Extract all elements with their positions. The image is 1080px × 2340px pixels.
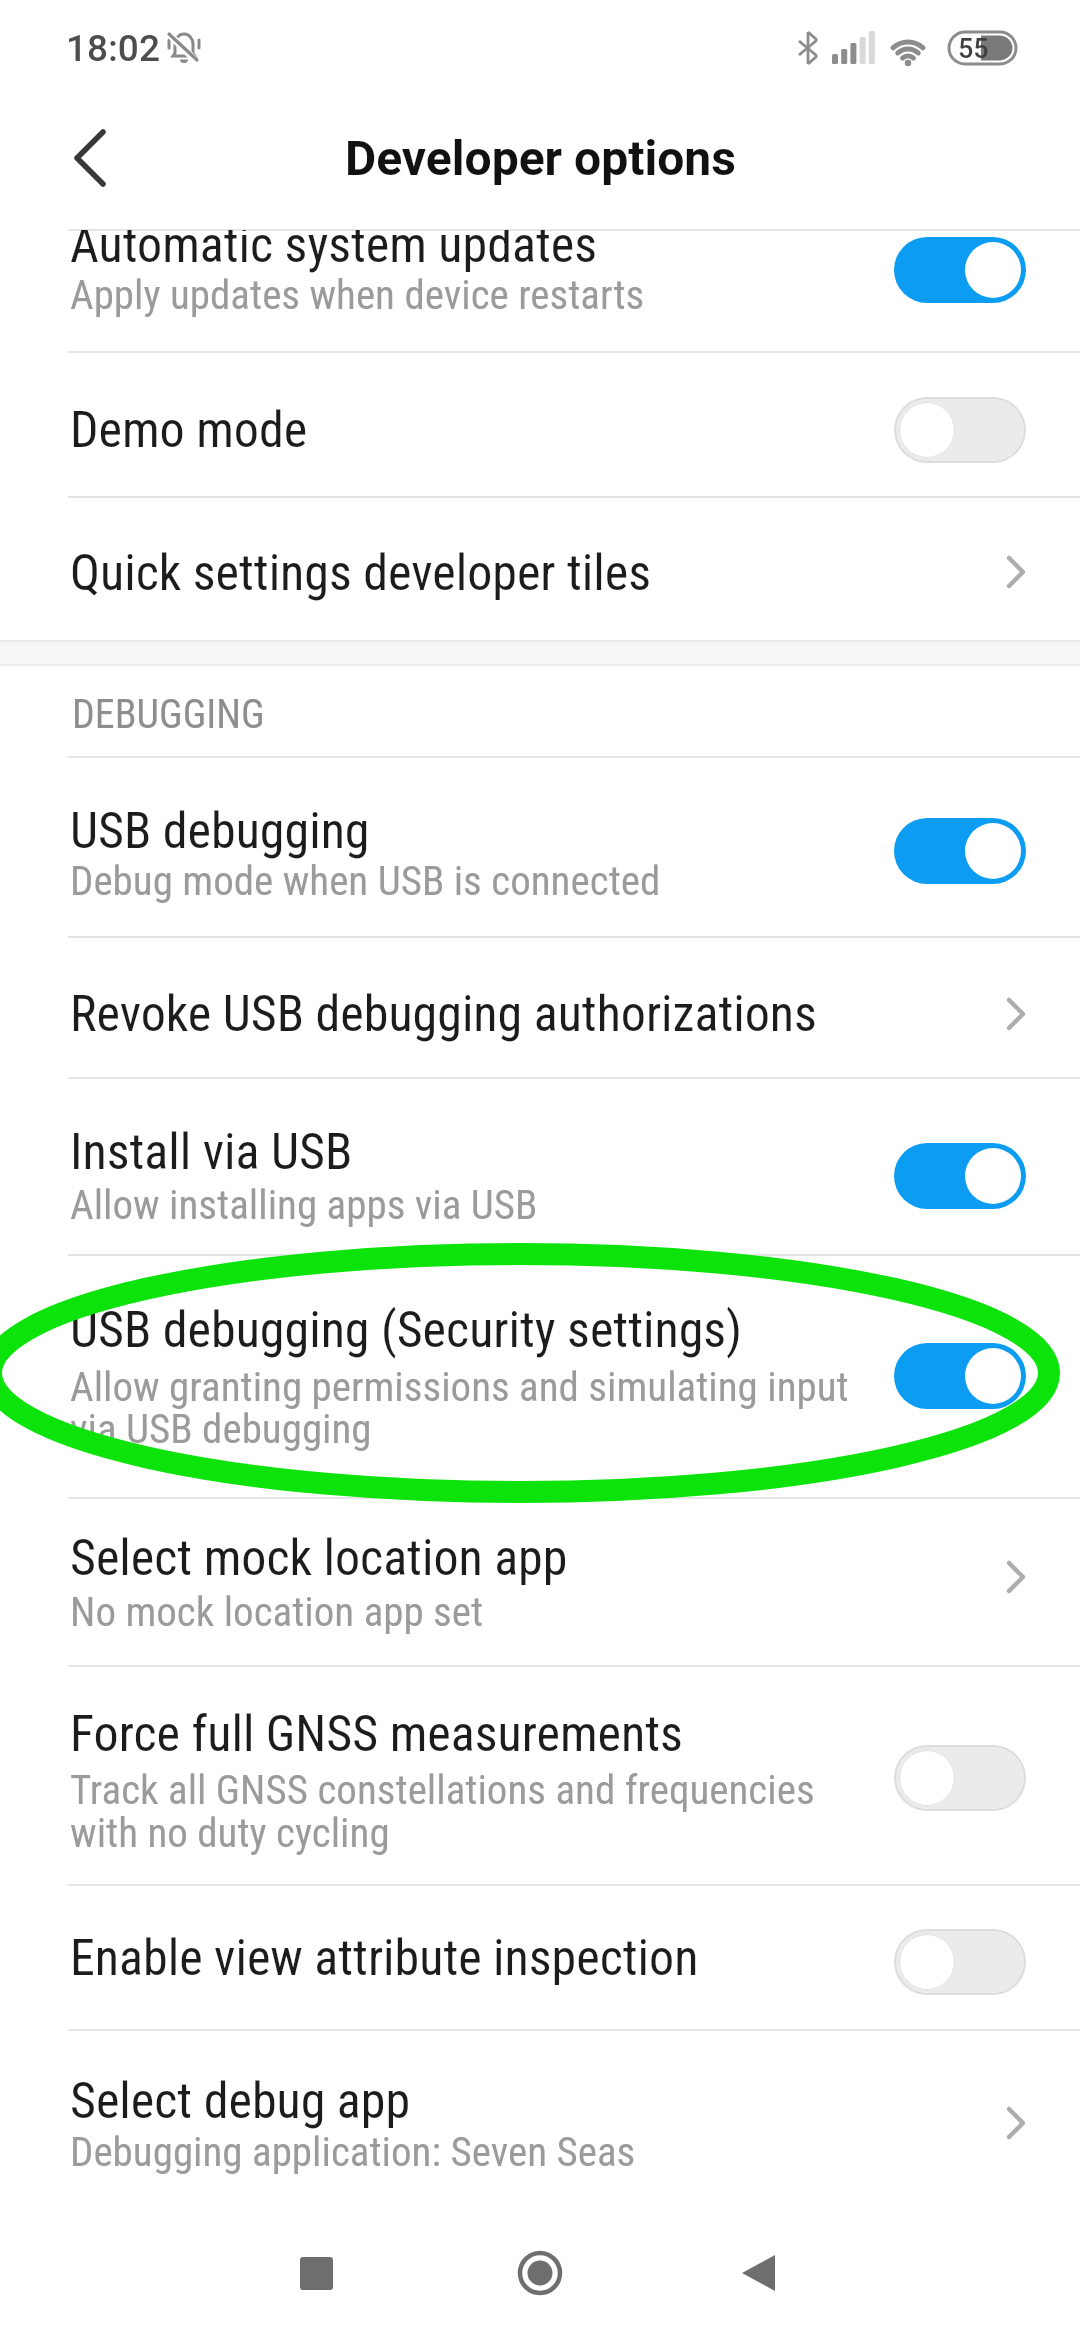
button[interactable] — [0, 1885, 1080, 2029]
button[interactable] — [0, 352, 1080, 496]
staticText: DEBUGGING — [72, 691, 265, 738]
staticText: Automatic system updates — [70, 230, 597, 275]
button[interactable] — [894, 397, 1026, 463]
button[interactable] — [0, 1498, 1080, 1665]
button[interactable] — [894, 1343, 1026, 1409]
button[interactable] — [894, 1745, 1026, 1811]
button[interactable] — [0, 230, 1080, 352]
staticText: 18:02 — [66, 27, 160, 70]
staticText: Allow granting permissions and simulatin… — [70, 1363, 849, 1411]
staticText: with no duty cycling — [70, 1809, 390, 1857]
staticText: Debug mode when USB is connected — [70, 857, 661, 905]
staticText: Select mock location app — [70, 1529, 568, 1588]
button[interactable] — [0, 757, 1080, 936]
staticText: No mock location app set — [70, 1588, 484, 1636]
staticText: USB debugging — [70, 802, 370, 861]
button[interactable] — [285, 2242, 347, 2304]
staticText: Developer options — [345, 130, 736, 186]
staticText: Apply updates when device restarts — [70, 271, 645, 319]
button[interactable] — [0, 1666, 1080, 1884]
staticText: Debugging application: Seven Seas — [70, 2128, 636, 2176]
staticText: Allow installing apps via USB — [70, 1181, 538, 1229]
button[interactable] — [509, 2242, 571, 2304]
button[interactable] — [894, 1929, 1026, 1995]
staticText: Install via USB — [70, 1123, 353, 1182]
staticText: USB debugging (Security settings) — [70, 1301, 743, 1360]
staticText: Demo mode — [70, 401, 308, 460]
button[interactable] — [0, 1078, 1080, 1254]
staticText: via USB debugging — [70, 1405, 372, 1453]
button[interactable] — [0, 497, 1080, 640]
button[interactable] — [0, 2030, 1080, 2210]
button[interactable] — [894, 1143, 1026, 1209]
staticText: Quick settings developer tiles — [70, 544, 652, 603]
staticText: Enable view attribute inspection — [70, 1929, 699, 1988]
staticText: Force full GNSS measurements — [70, 1705, 683, 1764]
button[interactable] — [0, 1255, 1080, 1497]
staticText: 55 — [958, 33, 989, 65]
button[interactable] — [894, 237, 1026, 303]
button[interactable] — [55, 122, 125, 192]
button[interactable] — [729, 2242, 791, 2304]
staticText: Revoke USB debugging authorizations — [70, 985, 817, 1044]
button[interactable] — [894, 818, 1026, 884]
staticText: Track all GNSS constellations and freque… — [70, 1766, 815, 1814]
button[interactable] — [0, 937, 1080, 1077]
staticText: Select debug app — [70, 2072, 411, 2131]
